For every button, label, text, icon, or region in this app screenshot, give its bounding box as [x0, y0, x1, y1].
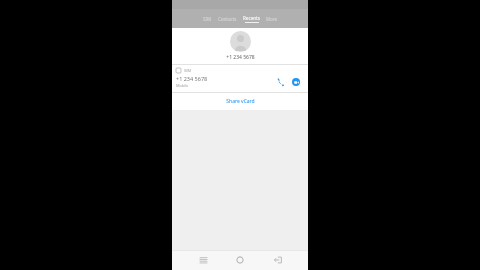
staticText: Mobile	[176, 83, 189, 88]
staticText: +1 234 5678	[176, 75, 208, 82]
staticText: Share vCard	[226, 98, 255, 105]
staticText: +1 234 5678	[226, 54, 255, 61]
staticText: SIM	[203, 16, 212, 22]
button[interactable]: Share vCard	[172, 93, 308, 110]
button[interactable]: More	[263, 16, 281, 22]
button[interactable]: Call	[273, 75, 286, 88]
button[interactable]: +1 234 5678	[172, 73, 308, 92]
button[interactable]: Contact photo	[230, 31, 251, 52]
button[interactable]: SIM	[200, 16, 215, 22]
button[interactable]: Back	[271, 253, 285, 267]
staticText: Contacts	[218, 16, 237, 22]
staticText: SIM	[184, 68, 192, 73]
staticText: More	[266, 16, 278, 22]
button[interactable]: Video call	[289, 75, 302, 88]
staticText: Recents	[243, 15, 260, 21]
button[interactable]: Recents	[240, 15, 263, 23]
button[interactable]: Home	[233, 253, 247, 267]
button[interactable]: Recent apps	[196, 253, 210, 267]
button[interactable]: Contacts	[215, 16, 240, 22]
